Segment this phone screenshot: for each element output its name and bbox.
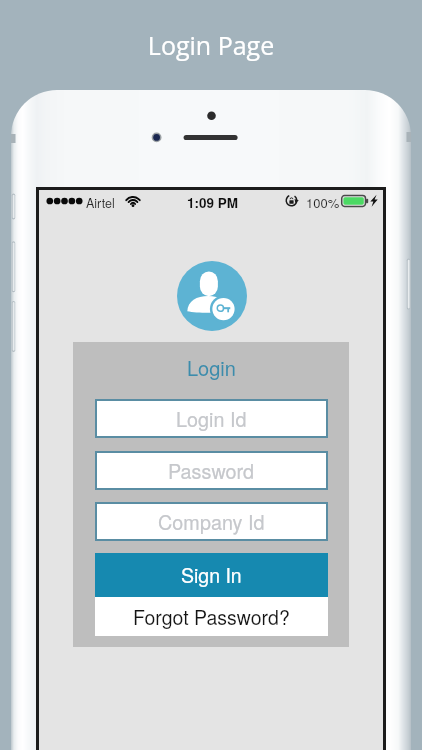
- staticText: 1:09 PM: [187, 193, 239, 212]
- other: User account: [177, 261, 247, 331]
- staticText: Login Id: [176, 404, 247, 432]
- staticText: Airtel: [86, 194, 115, 212]
- staticText: Login: [187, 353, 236, 382]
- button[interactable]: Password: [95, 451, 328, 490]
- button[interactable]: Login Id: [95, 399, 328, 438]
- staticText: Forgot Password?: [133, 603, 290, 631]
- button[interactable]: Forgot Password?: [95, 597, 328, 636]
- staticText: Sign In: [181, 561, 242, 589]
- button[interactable]: Sign In: [95, 553, 328, 597]
- staticText: Login Page: [0, 28, 422, 62]
- button[interactable]: Company Id: [95, 502, 328, 541]
- staticText: 100%: [306, 193, 340, 212]
- staticText: Password: [168, 456, 255, 484]
- staticText: Company Id: [158, 507, 265, 535]
